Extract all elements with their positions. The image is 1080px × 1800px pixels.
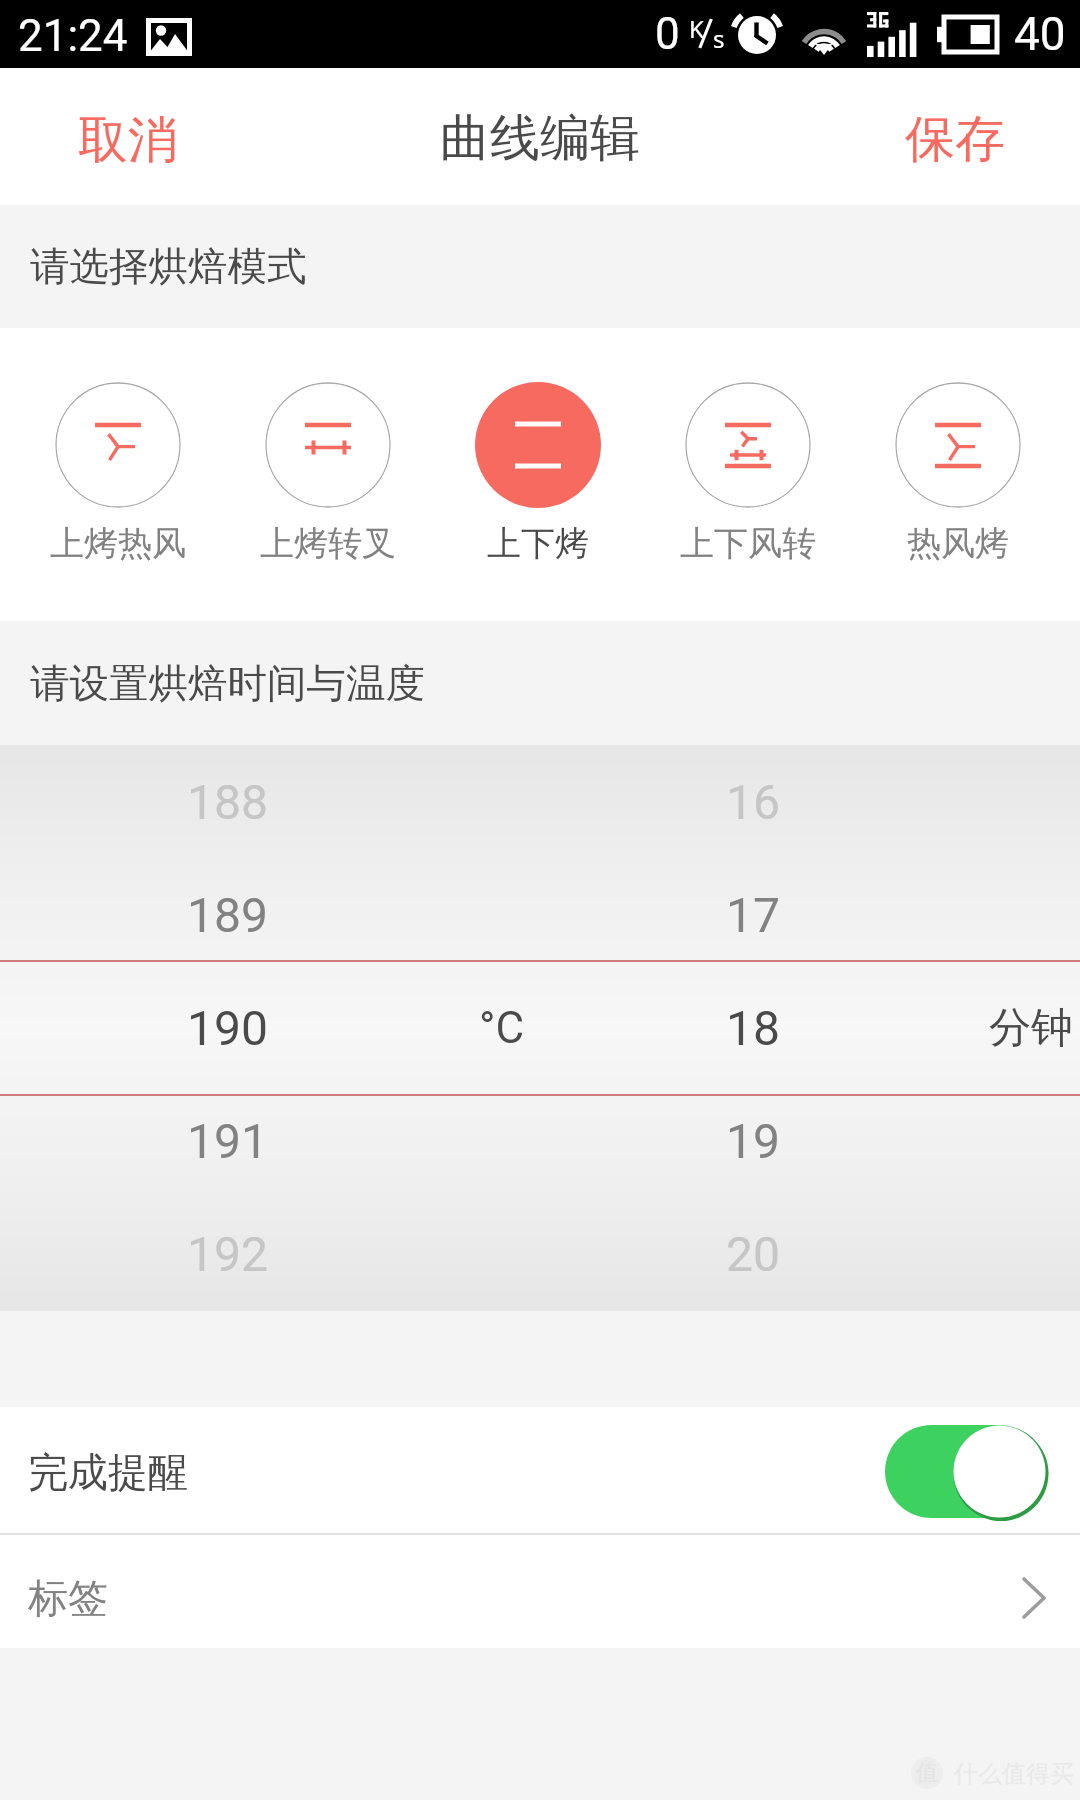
staticText: 标签: [28, 1573, 108, 1623]
button[interactable]: 保存: [855, 68, 1080, 205]
staticText: 上下风转: [680, 522, 816, 565]
button[interactable]: 上烤转叉: [223, 328, 433, 621]
staticText: 保存: [905, 108, 1005, 171]
button[interactable]: 上下风转: [643, 328, 853, 621]
staticText: 189: [187, 887, 268, 943]
staticText: 值: [916, 1759, 938, 1787]
staticText: 18: [726, 1000, 780, 1056]
staticText: 20: [726, 1226, 780, 1282]
staticText: 21:24: [18, 10, 128, 62]
staticText: K: [689, 12, 704, 45]
staticText: 请设置烘焙时间与温度: [30, 659, 425, 709]
staticText: 190: [187, 1000, 268, 1056]
staticText: 分钟: [989, 1002, 1073, 1055]
staticText: 上下烤: [487, 522, 589, 565]
staticText: 完成提醒: [28, 1447, 188, 1497]
staticText: 16: [726, 774, 780, 830]
staticText: 上烤转叉: [260, 522, 396, 565]
other: 打开标签: [1022, 1576, 1046, 1620]
staticText: 什么值得买: [954, 1759, 1074, 1789]
staticText: 19: [726, 1113, 780, 1169]
staticText: 曲线编辑: [440, 107, 640, 170]
staticText: 取消: [78, 109, 178, 172]
button[interactable]: 热风烤: [853, 328, 1063, 621]
staticText: 17: [726, 887, 780, 943]
staticText: 192: [187, 1226, 268, 1282]
button[interactable]: 上烤热风: [13, 328, 223, 621]
button[interactable]: 上下烤: [433, 328, 643, 621]
staticText: 0: [655, 8, 680, 60]
staticText: 上烤热风: [50, 522, 186, 565]
button[interactable]: 完成提醒: [0, 1407, 1080, 1533]
staticText: 请选择烘焙模式: [30, 242, 307, 292]
button[interactable]: 完成提醒开关: [885, 1424, 1046, 1519]
button[interactable]: 取消: [0, 68, 228, 205]
button[interactable]: 标签: [0, 1535, 1080, 1648]
staticText: s: [713, 22, 725, 55]
staticText: 40: [1014, 7, 1066, 61]
staticText: 191: [187, 1113, 268, 1169]
staticText: 188: [187, 774, 268, 830]
staticText: °C: [479, 1002, 525, 1054]
staticText: 热风烤: [907, 522, 1009, 565]
